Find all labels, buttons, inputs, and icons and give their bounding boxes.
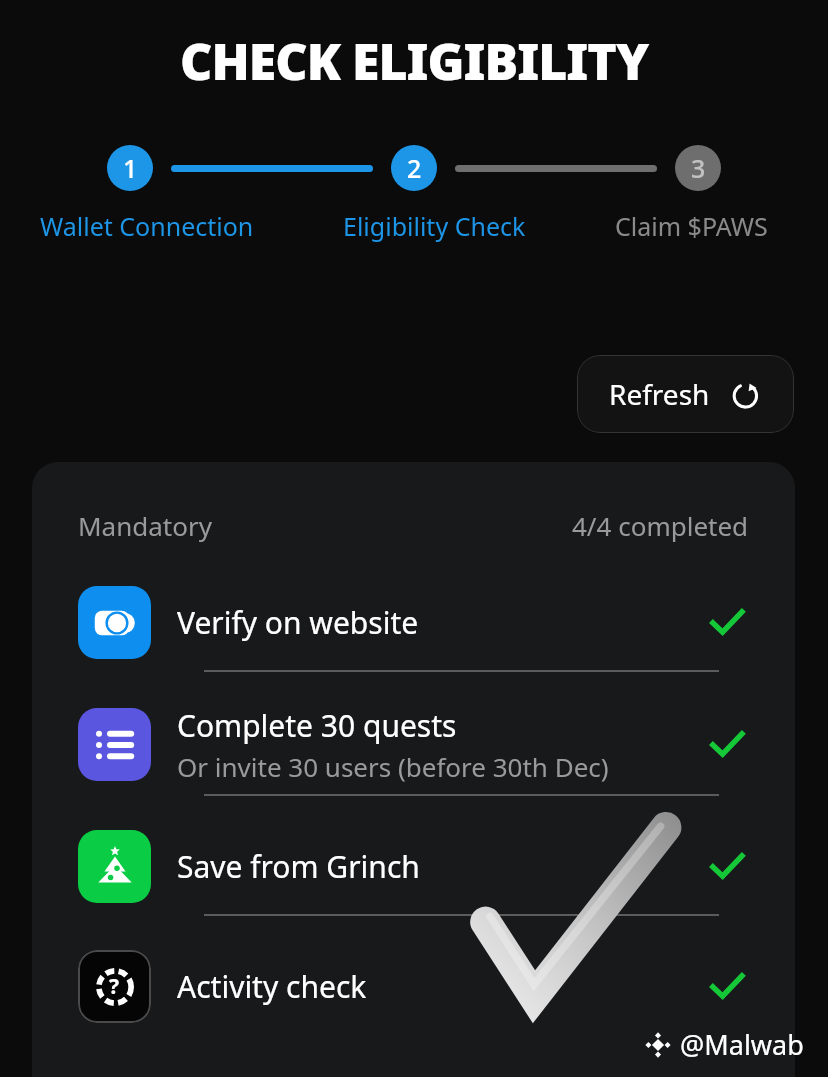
other: Save from Grinch xyxy=(78,830,151,903)
staticText: 2 xyxy=(407,151,422,185)
staticText: Mandatory xyxy=(78,508,212,543)
staticText: Wallet Connection xyxy=(40,209,254,243)
staticText: 1 xyxy=(123,151,138,185)
other: Activity check xyxy=(78,950,151,1023)
staticText: Eligibility Check xyxy=(343,209,526,243)
staticText: Or invite 30 users (before 30th Dec) xyxy=(177,749,609,784)
button[interactable]: 2 xyxy=(391,145,437,191)
staticText: ? xyxy=(109,972,120,1001)
staticText: Refresh xyxy=(609,375,710,413)
staticText: Claim $PAWS xyxy=(615,209,768,243)
staticText: Complete 30 quests xyxy=(177,705,457,746)
other: Quests xyxy=(78,708,151,781)
button[interactable]: 3 xyxy=(675,145,721,191)
staticText: Activity check xyxy=(177,966,367,1007)
button[interactable]: Quests xyxy=(32,694,795,794)
button[interactable]: 1 xyxy=(107,145,153,191)
other: Wallet xyxy=(78,586,151,659)
staticText: 4/4 completed xyxy=(572,508,749,543)
staticText: @Malwab xyxy=(680,1026,804,1063)
staticText: 3 xyxy=(691,151,706,185)
staticText: CHECK ELIGIBILITY xyxy=(180,27,649,95)
button[interactable]: Refresh xyxy=(577,355,794,433)
other: Refresh xyxy=(730,378,762,410)
staticText: Save from Grinch xyxy=(177,846,420,887)
button[interactable]: Activity check xyxy=(32,938,795,1034)
staticText: Verify on website xyxy=(177,602,419,643)
button[interactable]: Wallet xyxy=(32,574,795,670)
button[interactable]: Save from Grinch xyxy=(32,818,795,914)
